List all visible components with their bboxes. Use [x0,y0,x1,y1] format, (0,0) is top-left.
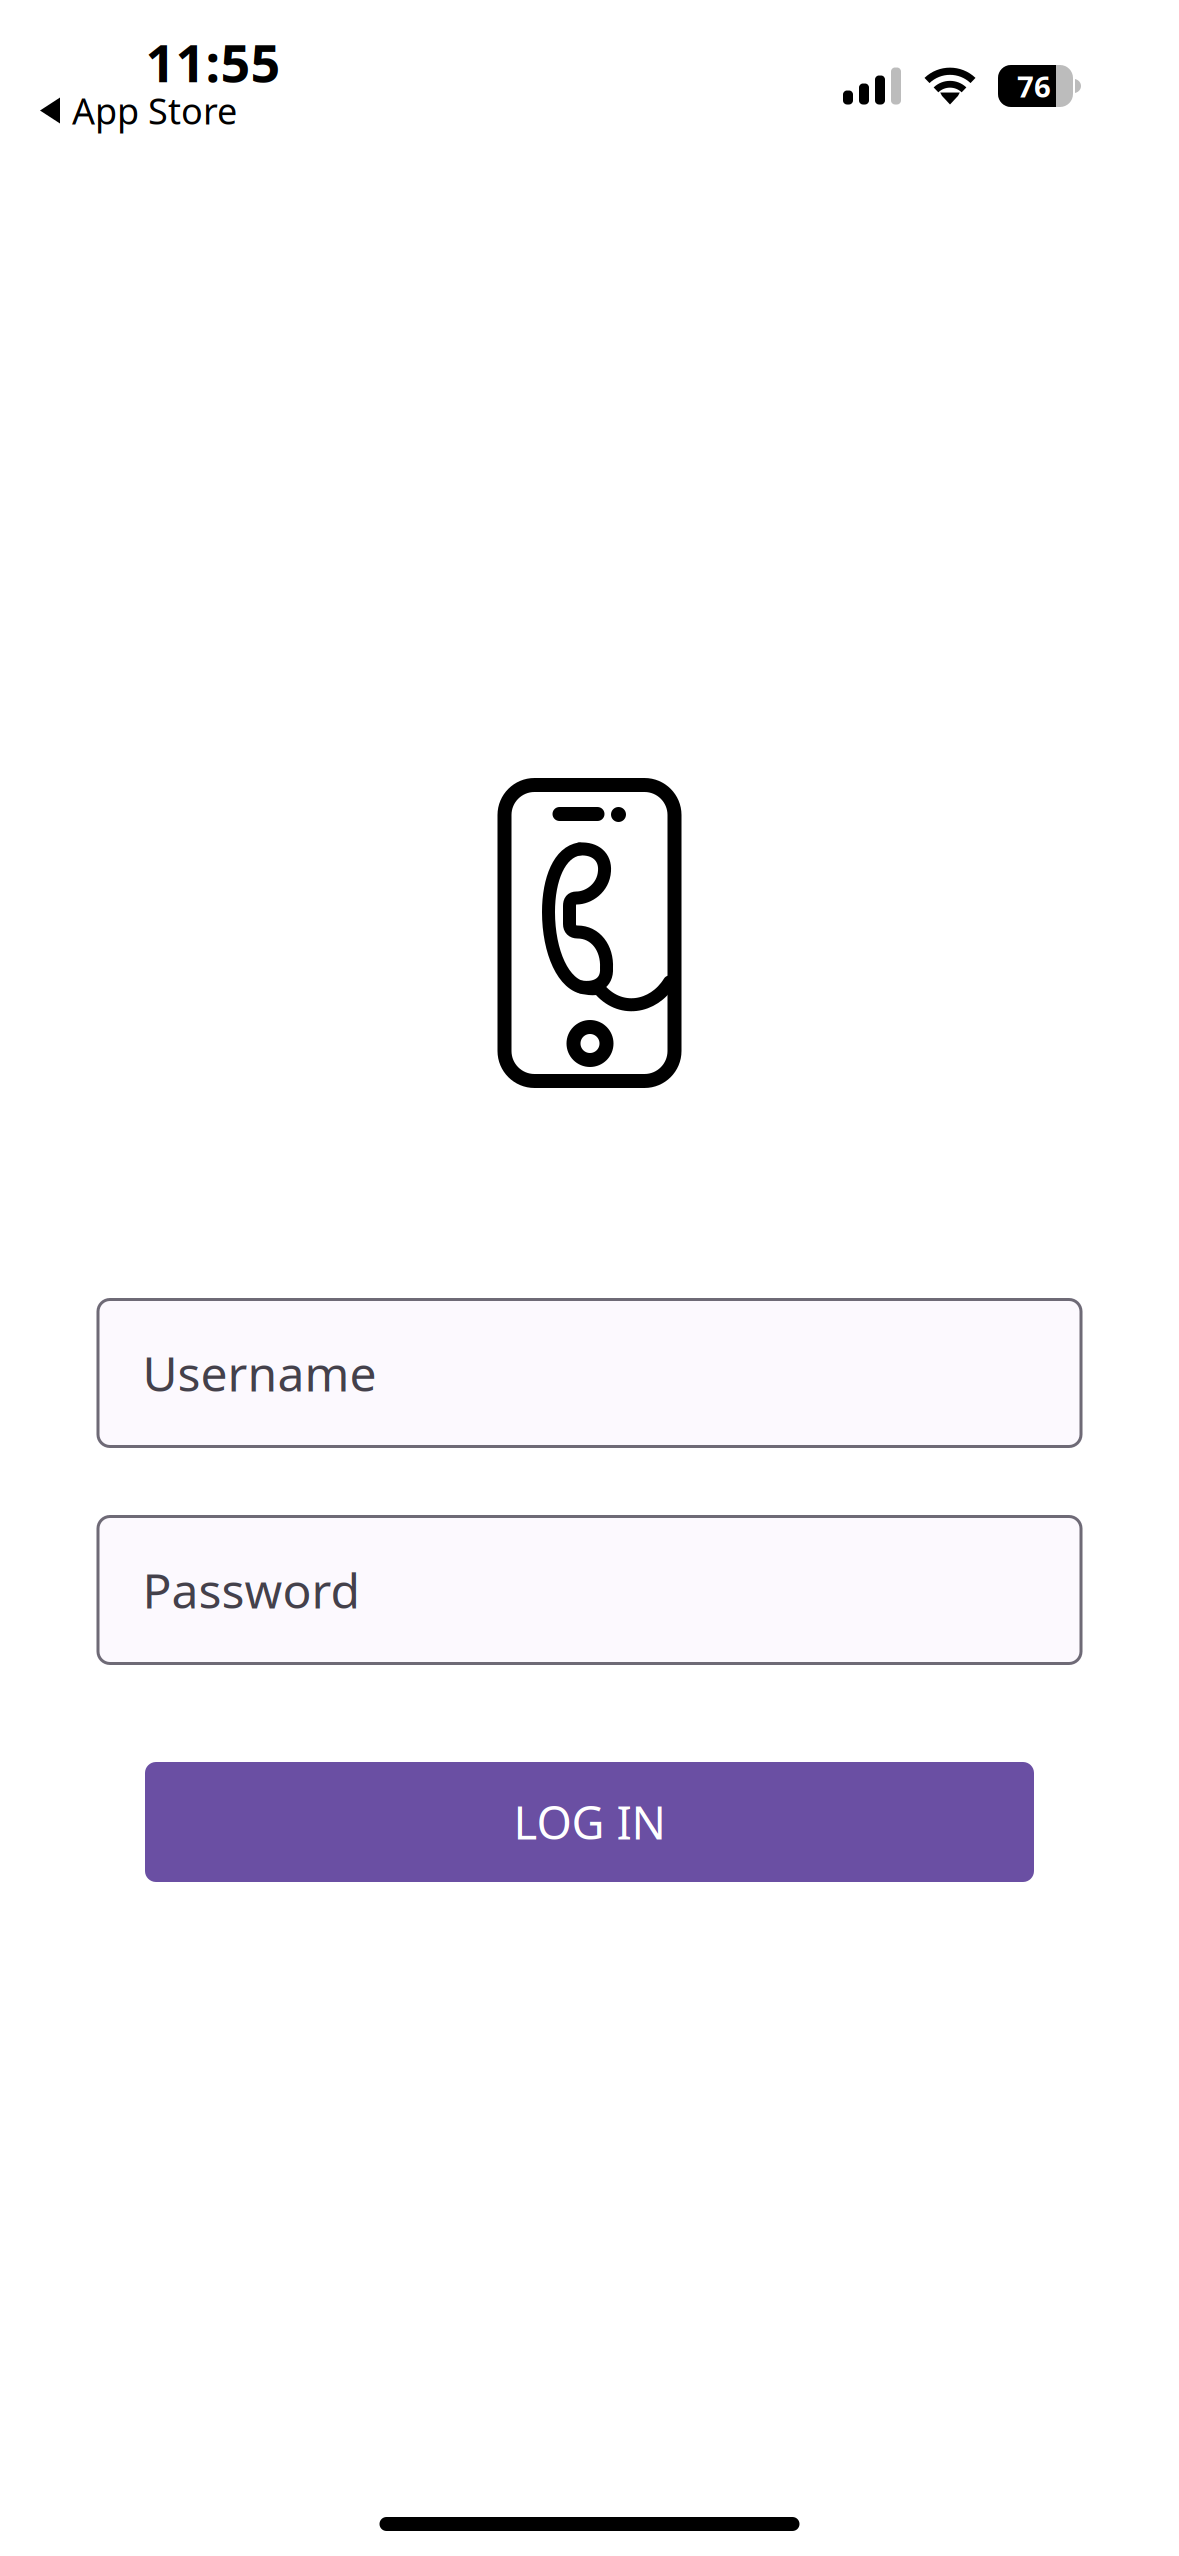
button[interactable]: Username [96,1298,1082,1448]
button[interactable]: Password [96,1515,1082,1665]
staticText: 76 [1017,66,1051,106]
staticText: Password [142,1557,360,1623]
staticText: LOG IN [513,1791,665,1853]
button[interactable]: App Store [0,0,237,135]
staticText: App Store [72,86,237,135]
button[interactable]: LOG IN [145,1762,1034,1882]
staticText: Username [142,1340,376,1406]
staticText: 11:55 [145,27,280,97]
